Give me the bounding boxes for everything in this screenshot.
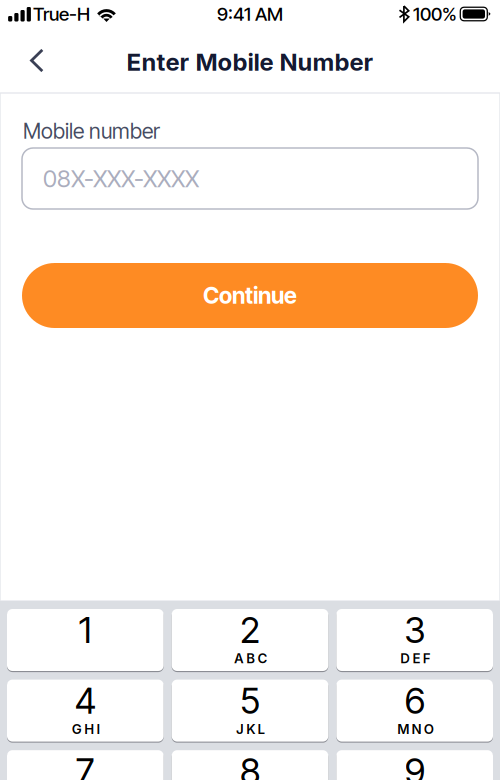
button[interactable]: Continue (22, 263, 478, 328)
staticText: 08X-XXX-XXXX (43, 164, 199, 193)
staticText: 8 (240, 749, 260, 780)
button[interactable]: Back (0, 34, 60, 86)
button[interactable]: 6 (336, 680, 493, 742)
button[interactable]: 2 (172, 609, 328, 671)
staticText: Continue (203, 282, 297, 309)
button[interactable]: 4 (7, 680, 164, 742)
staticText: 9 (405, 749, 425, 780)
staticText: Enter Mobile Number (126, 47, 373, 76)
staticText: 7 (76, 749, 95, 780)
staticText: 9:41 AM (217, 3, 283, 25)
staticText: MNO (397, 721, 434, 737)
button[interactable]: 9 (336, 750, 493, 780)
staticText: 6 (405, 679, 425, 722)
staticText: 2 (240, 608, 260, 652)
button[interactable]: 8 (172, 750, 328, 780)
staticText: 3 (404, 608, 425, 652)
staticText: True-H (33, 3, 90, 25)
button[interactable]: 3 (336, 609, 493, 671)
staticText: Mobile number (23, 118, 160, 144)
staticText: 1 (79, 608, 92, 652)
staticText: 100% (413, 3, 457, 25)
button[interactable]: 7 (7, 750, 164, 780)
staticText: GHI (72, 721, 100, 737)
staticText: DEF (400, 650, 431, 666)
staticText: ABC (234, 650, 268, 666)
button[interactable]: 5 (172, 680, 328, 742)
staticText: 4 (75, 679, 96, 722)
staticText: 5 (240, 679, 260, 722)
button[interactable]: 1 (7, 609, 164, 671)
staticText: JKL (236, 721, 266, 737)
